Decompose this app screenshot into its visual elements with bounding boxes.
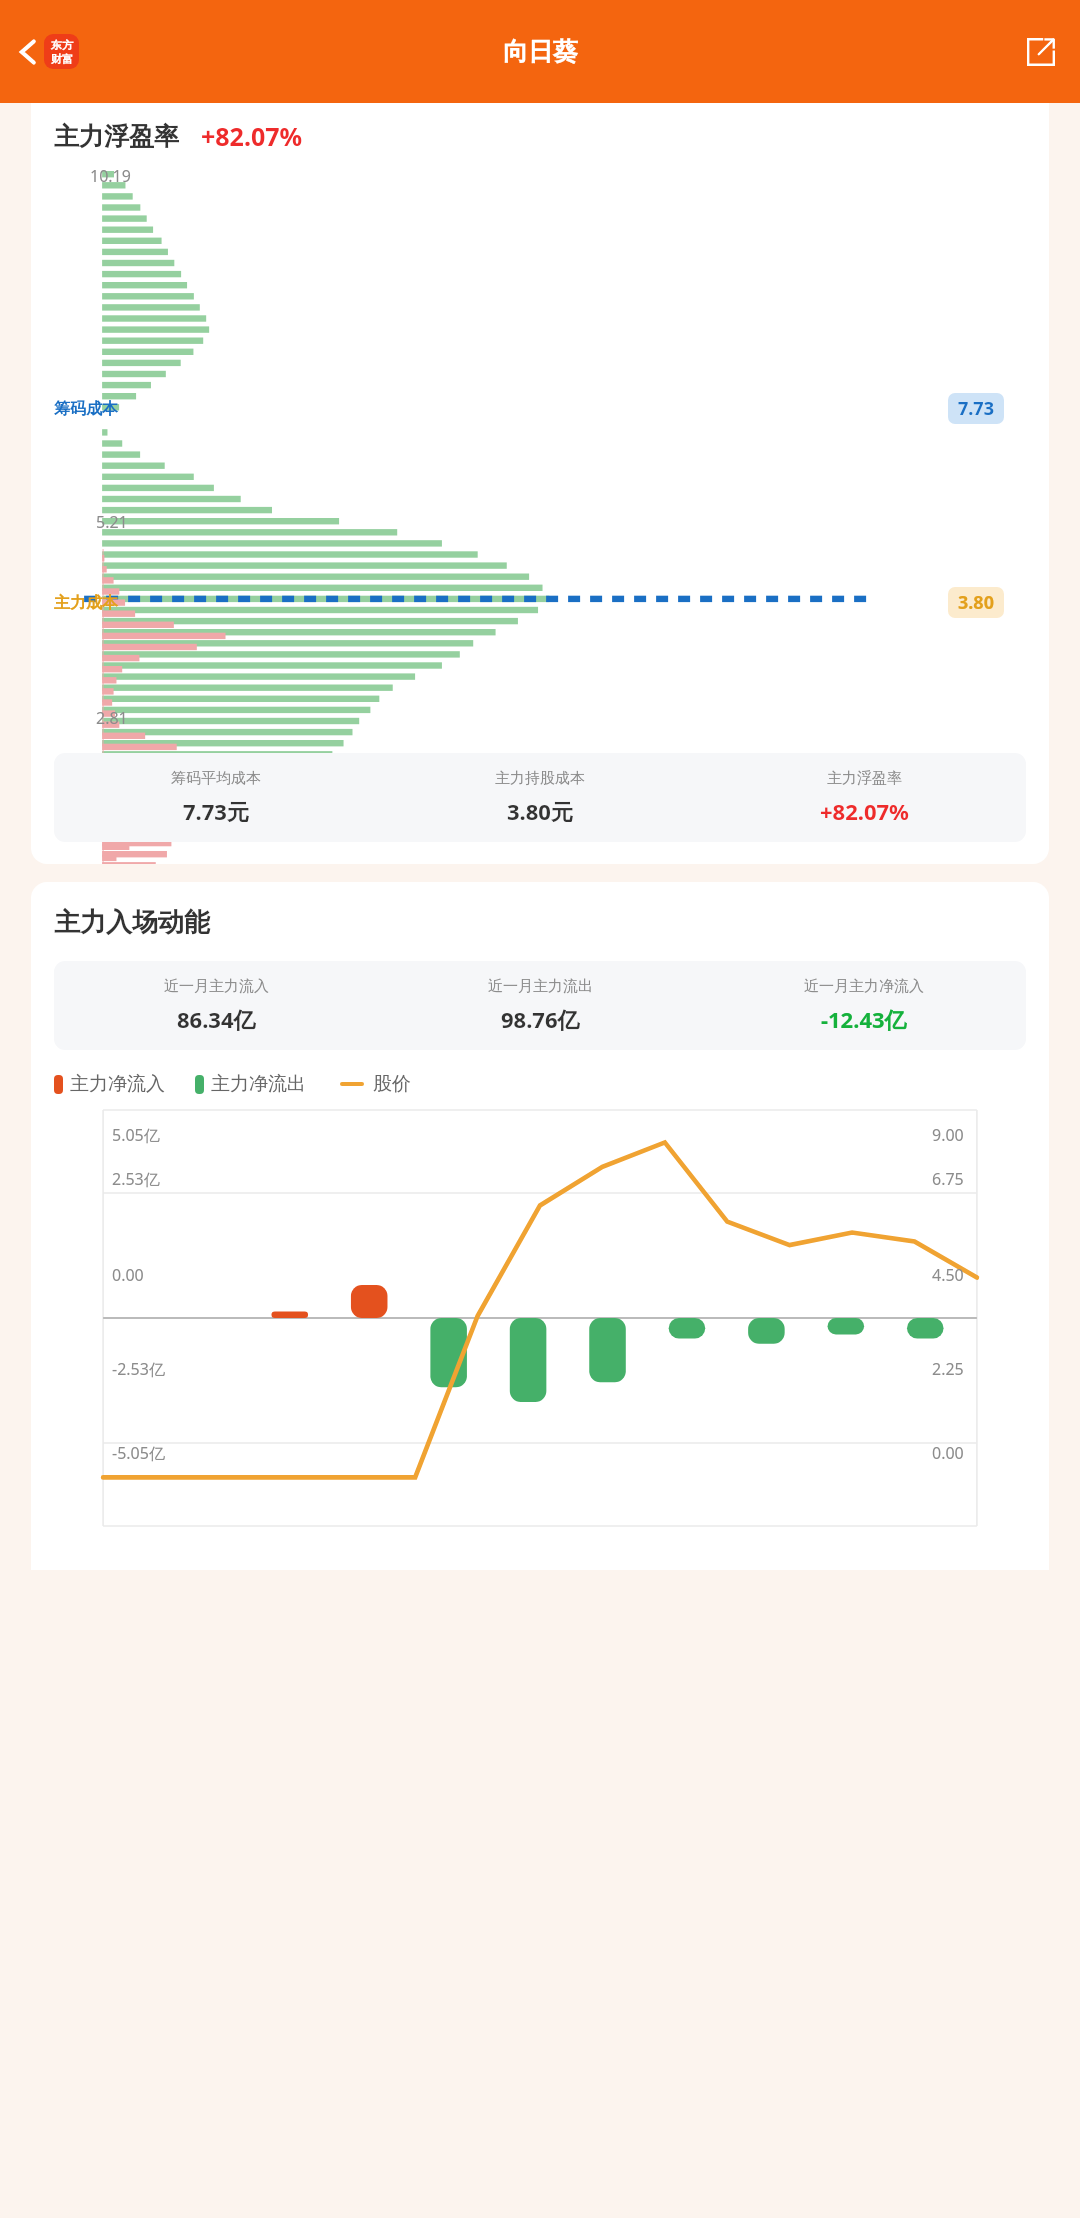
staticText: 3.80元 [507,796,573,826]
staticText: 近一月主力流入 [164,977,269,996]
staticText: 主力净流入 [70,1072,165,1096]
staticText: 财富 [51,52,73,66]
staticText: 东方 [51,38,73,52]
staticText: 股价 [373,1072,411,1096]
staticText: 3.80 [958,590,994,615]
staticText: -5.05亿 [112,1442,165,1464]
staticText: 10.19 [90,165,131,187]
staticText: 主力入场动能 [54,906,210,939]
staticText: 6.75 [932,1168,964,1190]
staticText: 0.00 [112,1264,144,1286]
staticText: 主力浮盈率 [54,121,179,152]
button[interactable]: Back [4,28,52,76]
staticText: 向日葵 [503,36,578,67]
staticText: 0.00 [932,1442,964,1464]
staticText: 筹码成本 [54,399,118,419]
staticText: 主力成本 [54,593,118,613]
staticText: 筹码平均成本 [171,769,261,788]
staticText: 86.34亿 [177,1004,256,1034]
staticText: +82.07% [820,796,909,826]
staticText: +82.07% [201,119,303,153]
staticText: 7.73 [958,396,994,421]
button[interactable]: Share [1018,29,1064,75]
staticText: 主力净流出 [211,1072,306,1096]
staticText: 近一月主力流出 [488,977,593,996]
staticText: 2.53亿 [112,1168,160,1190]
staticText: 2.81 [96,707,128,729]
staticText: -2.53亿 [112,1358,165,1380]
staticText: 4.50 [932,1264,964,1286]
staticText: 主力持股成本 [495,769,585,788]
staticText: 2.25 [932,1358,964,1380]
staticText: 9.00 [932,1124,964,1146]
staticText: 近一月主力净流入 [804,977,924,996]
staticText: 5.05亿 [112,1124,160,1146]
staticText: 主力浮盈率 [827,769,902,788]
staticText: 98.76亿 [501,1004,580,1034]
staticText: 7.73元 [183,796,249,826]
staticText: 5.21 [96,511,128,533]
button[interactable]: 东方财富 [44,34,79,69]
staticText: -12.43亿 [821,1004,907,1034]
